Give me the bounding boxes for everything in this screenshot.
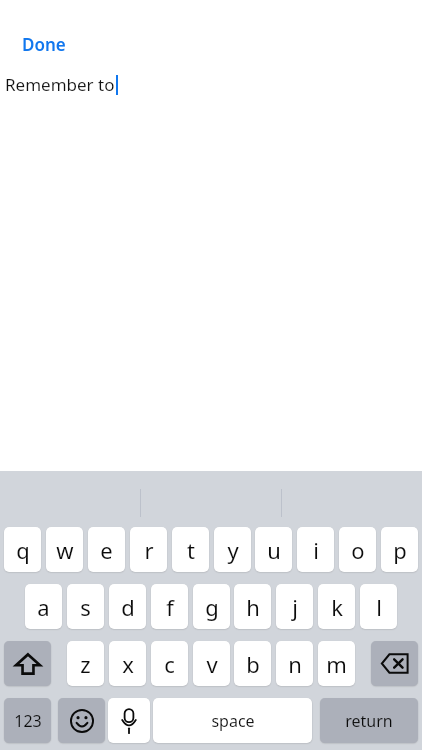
staticText: q	[16, 535, 30, 565]
button[interactable]: o	[339, 527, 376, 572]
staticText: s	[80, 592, 91, 622]
button[interactable]: k	[318, 584, 355, 629]
staticText: e	[100, 535, 113, 565]
staticText: u	[267, 535, 281, 565]
button[interactable]: Backspace	[371, 641, 418, 686]
button[interactable]: s	[67, 584, 104, 629]
button[interactable]: r	[130, 527, 167, 572]
button[interactable]: 123	[4, 698, 51, 743]
staticText: x	[122, 649, 134, 679]
button[interactable]: v	[193, 641, 230, 686]
staticText: p	[393, 535, 407, 565]
staticText: r	[144, 535, 154, 565]
staticText: o	[351, 535, 365, 565]
staticText: Done	[22, 33, 66, 56]
button[interactable]: Remember to	[5, 73, 422, 96]
staticText: a	[37, 592, 50, 622]
button[interactable]: n	[276, 641, 313, 686]
button[interactable]: z	[67, 641, 104, 686]
button[interactable]: x	[109, 641, 146, 686]
staticText: space	[211, 710, 255, 732]
staticText: Remember to	[5, 73, 115, 96]
button[interactable]: f	[151, 584, 188, 629]
button[interactable]: l	[360, 584, 397, 629]
staticText: k	[331, 592, 343, 622]
staticText: n	[288, 649, 302, 679]
staticText: v	[206, 649, 218, 679]
button[interactable]: e	[88, 527, 125, 572]
button[interactable]: Done	[10, 27, 78, 62]
staticText: i	[313, 535, 319, 565]
button[interactable]: Emoji keyboard	[58, 698, 105, 743]
staticText: g	[205, 592, 219, 622]
staticText: l	[376, 592, 382, 622]
staticText: return	[345, 710, 393, 732]
staticText: h	[246, 592, 260, 622]
button[interactable]: j	[276, 584, 313, 629]
button[interactable]: t	[172, 527, 209, 572]
staticText: y	[227, 535, 239, 565]
staticText: w	[56, 535, 74, 565]
staticText: t	[187, 535, 195, 565]
button[interactable]: g	[193, 584, 230, 629]
button[interactable]: Voice input	[108, 698, 150, 743]
button[interactable]: space	[153, 698, 312, 743]
button[interactable]: q	[4, 527, 41, 572]
staticText: m	[326, 649, 347, 679]
button[interactable]: w	[46, 527, 83, 572]
staticText: b	[246, 649, 260, 679]
button[interactable]: p	[381, 527, 418, 572]
button[interactable]: b	[234, 641, 271, 686]
button[interactable]: h	[234, 584, 271, 629]
button[interactable]: m	[318, 641, 355, 686]
button[interactable]: Shift	[4, 641, 51, 686]
button[interactable]: c	[151, 641, 188, 686]
button[interactable]: i	[297, 527, 334, 572]
staticText: 123	[14, 710, 42, 732]
button[interactable]: return	[320, 698, 418, 743]
staticText: z	[80, 649, 91, 679]
button[interactable]: u	[255, 527, 292, 572]
staticText: j	[292, 592, 298, 622]
button[interactable]: d	[109, 584, 146, 629]
button[interactable]: a	[25, 584, 62, 629]
staticText: f	[166, 592, 174, 622]
staticText: c	[164, 649, 175, 679]
button[interactable]: y	[214, 527, 251, 572]
staticText: d	[121, 592, 135, 622]
